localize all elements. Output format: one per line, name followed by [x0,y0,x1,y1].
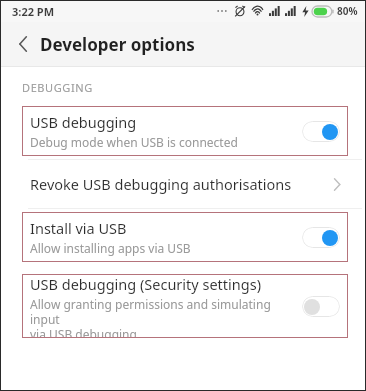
staticText: USB debugging (Security settings) [30,274,261,294]
staticText: USB debugging [30,112,137,132]
button[interactable]: Install via USB [22,212,348,262]
button[interactable]: Toggle off [302,296,340,317]
button[interactable]: Toggle on [302,121,340,142]
staticText: Install via USB [30,218,127,238]
staticText: 80% [337,4,358,18]
button[interactable]: Toggle on [302,227,340,248]
staticText: DEBUGGING [22,80,93,95]
staticText: Revoke USB debugging authorisations [30,174,332,194]
staticText: Allow installing apps via USB [30,240,191,256]
button[interactable]: USB debugging [22,106,348,156]
staticText: Allow granting permissions and simulatin… [30,296,296,338]
button[interactable]: USB debugging (Security settings) [22,274,348,338]
staticText: Debug mode when USB is connected [30,134,238,150]
staticText: Developer options [40,33,195,56]
button[interactable]: Back [6,27,40,61]
staticText: 3:22 PM [12,4,55,19]
button[interactable]: Revoke USB debugging authorisations [0,160,366,208]
